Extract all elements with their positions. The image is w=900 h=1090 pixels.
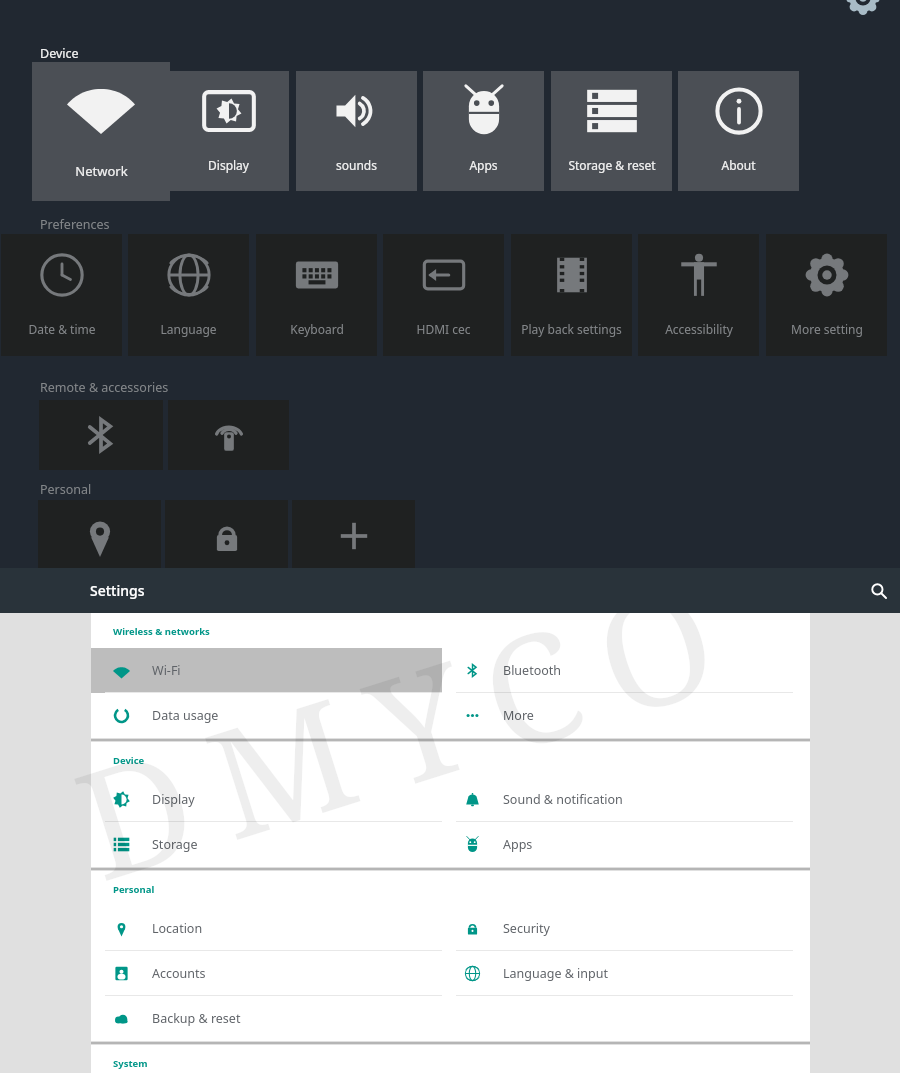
button[interactable]: Security [442,906,810,951]
staticText: Backup & reset [152,1010,241,1027]
button[interactable]: Play back settings [511,234,632,356]
button[interactable]: Accessibility [638,234,759,356]
button[interactable]: Apps [442,822,810,867]
button[interactable]: Language & input [442,951,810,996]
button[interactable]: Date & time [1,234,122,356]
staticText: HDMI cec [416,321,471,337]
staticText: Apps [469,157,498,173]
button[interactable]: pin [38,500,161,572]
button[interactable]: About [678,71,799,191]
button[interactable]: plus [292,500,415,572]
button[interactable]: Display [168,71,289,191]
button[interactable]: Accounts [91,951,442,996]
button[interactable]: Location [91,906,442,951]
button[interactable]: lock [165,500,288,572]
button[interactable]: Search [864,576,894,606]
staticText: Data usage [152,707,219,724]
staticText: Storage [152,836,198,853]
button[interactable]: Storage [91,822,442,867]
button[interactable]: Language [128,234,249,356]
staticText: Location [152,920,203,937]
staticText: Device [113,754,145,767]
staticText: Apps [503,836,533,853]
button[interactable]: Data usage [91,693,442,738]
button[interactable]: Bluetooth [442,648,810,693]
staticText: sounds [336,157,377,173]
button[interactable]: Keyboard [256,234,377,356]
button[interactable]: Settings [0,568,900,613]
staticText: Device [40,45,79,62]
button[interactable]: Backup & reset [91,996,442,1041]
button[interactable]: Wi-Fi [91,648,442,693]
staticText: More setting [791,321,863,337]
staticText: Settings [90,581,145,600]
button[interactable]: Display [91,777,442,822]
staticText: Network [75,162,128,178]
staticText: System [113,1057,148,1070]
staticText: Accessibility [665,321,733,337]
staticText: Play back settings [521,321,622,337]
other: Settings gear [845,0,881,16]
staticText: Keyboard [290,321,344,337]
staticText: Display [208,157,249,173]
button[interactable]: remote [168,400,289,470]
button[interactable]: bt [39,400,163,470]
staticText: Date & time [28,321,96,337]
staticText: Bluetooth [503,662,562,679]
staticText: Security [503,920,550,937]
staticText: Storage & reset [568,157,656,173]
staticText: Language & input [503,965,608,982]
staticText: Display [152,791,195,808]
button[interactable]: sounds [296,71,417,191]
staticText: About [721,157,756,173]
button[interactable]: More setting [766,234,887,356]
button[interactable]: Apps [423,71,544,191]
staticText: Personal [40,481,92,498]
button[interactable]: Sound & notification [442,777,810,822]
staticText: Preferences [40,216,110,233]
staticText: Language [160,321,217,337]
button[interactable]: More [442,693,810,738]
staticText: Wi-Fi [152,662,181,679]
staticText: Wireless & networks [113,625,210,638]
staticText: Accounts [152,965,206,982]
staticText: Personal [113,883,155,896]
button[interactable]: Network [32,62,170,201]
button[interactable]: HDMI cec [383,234,504,356]
staticText: Sound & notification [503,791,623,808]
button[interactable]: Storage & reset [551,71,672,191]
staticText: Remote & accessories [40,379,169,396]
staticText: DMYCO [53,613,764,921]
staticText: More [503,707,534,724]
